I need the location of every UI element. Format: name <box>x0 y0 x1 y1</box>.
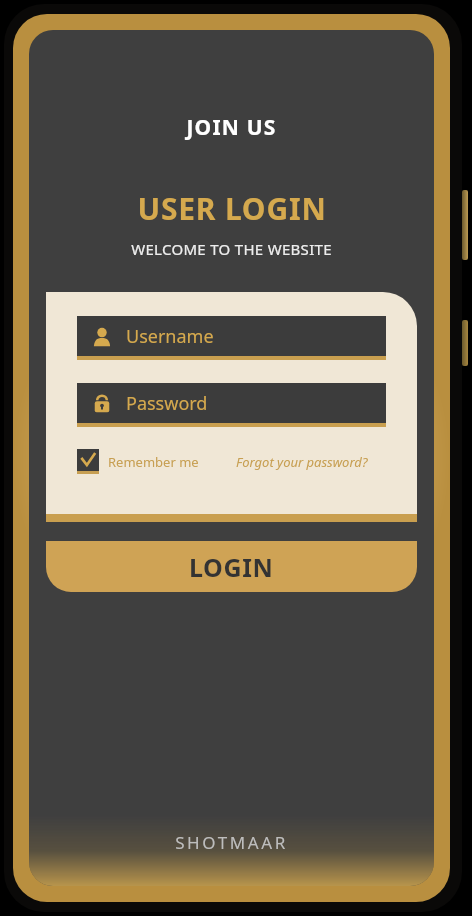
button[interactable]: User <box>77 316 386 360</box>
button[interactable]: Remember me <box>77 449 199 474</box>
staticText: Forgot your password? <box>236 453 368 471</box>
other: User <box>91 326 113 348</box>
staticText: Remember me <box>108 453 199 471</box>
staticText: USER LOGIN <box>137 188 327 229</box>
button[interactable]: Password <box>77 383 386 427</box>
other: Password <box>91 393 113 415</box>
staticText: SHOTMAAR <box>175 831 288 854</box>
button[interactable]: LOGIN <box>46 541 417 592</box>
button[interactable]: Forgot your password? <box>236 453 368 471</box>
staticText: Username <box>126 324 214 349</box>
staticText: LOGIN <box>189 550 274 584</box>
staticText: JOIN US <box>186 113 277 142</box>
staticText: WELCOME TO THE WEBSITE <box>131 239 332 259</box>
staticText: Password <box>126 391 208 416</box>
